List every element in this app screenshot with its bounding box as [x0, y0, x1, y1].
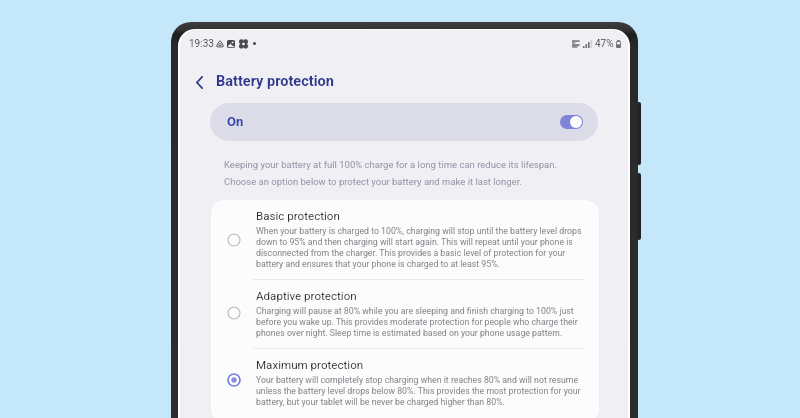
staticText: Adaptive protection	[256, 289, 357, 303]
staticText: Choose an option below to protect your b…	[224, 176, 522, 187]
staticText: Basic protection	[256, 209, 340, 223]
staticText: 19:33	[189, 38, 214, 50]
button[interactable]: Basic protection	[211, 200, 599, 279]
staticText: Battery protection	[216, 73, 334, 90]
staticText: Keeping your battery at full 100% charge…	[224, 159, 557, 170]
staticText: Charging will pause at 80% while you are…	[256, 305, 584, 338]
staticText: 47%	[595, 38, 614, 50]
button[interactable]: Back	[182, 65, 216, 99]
button[interactable]: Maximum protection	[211, 349, 599, 418]
button[interactable]: Adaptive protection	[211, 280, 599, 348]
staticText: Your battery will completely stop chargi…	[256, 374, 584, 407]
staticText: On	[227, 114, 244, 129]
staticText: Maximum protection	[256, 358, 364, 372]
staticText: When your battery is charged to 100%, ch…	[256, 225, 584, 269]
button[interactable]: On	[210, 103, 598, 141]
